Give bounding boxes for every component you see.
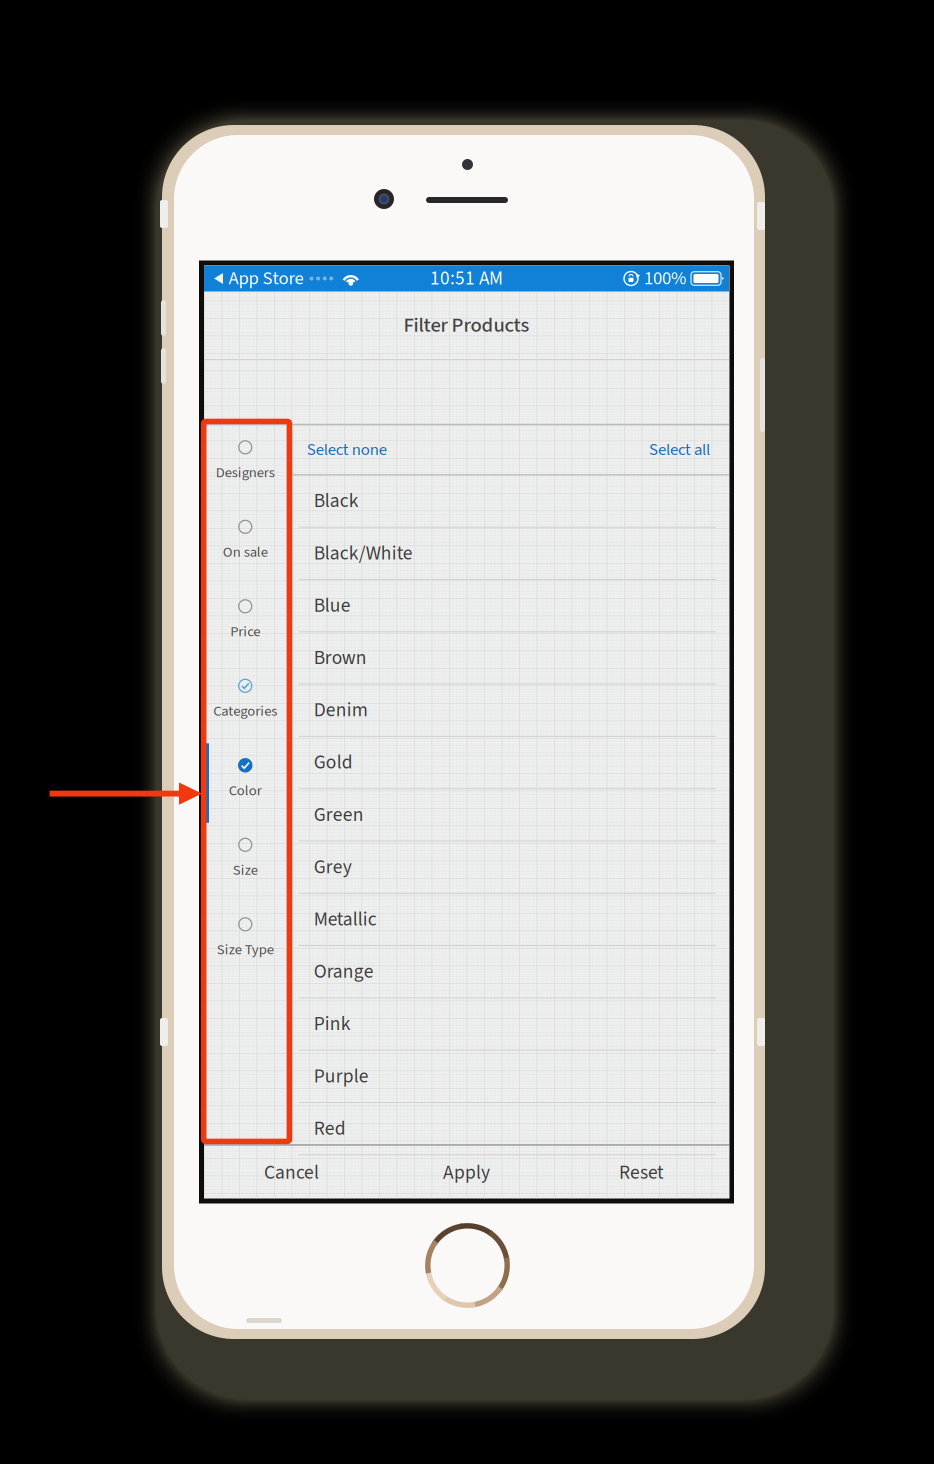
button[interactable]: Purple — [288, 1051, 729, 1102]
button[interactable]: Red — [288, 1103, 729, 1154]
staticText: App Store — [228, 265, 303, 292]
button[interactable]: Gold — [288, 737, 729, 788]
button[interactable]: Categories — [204, 664, 286, 743]
staticText: 100% — [644, 265, 686, 292]
button[interactable]: Size — [204, 823, 286, 902]
staticText: Select none — [307, 438, 387, 462]
button[interactable]: Designers — [204, 425, 286, 505]
button[interactable]: Cancel — [204, 1146, 379, 1200]
button[interactable]: Grey — [288, 841, 729, 893]
button[interactable]: On sale — [204, 505, 286, 584]
staticText: Designers — [216, 462, 275, 483]
button[interactable]: Blue — [288, 580, 729, 631]
button[interactable]: Apply — [379, 1146, 554, 1200]
staticText: 10:51 AM — [430, 265, 503, 292]
button[interactable]: Price — [204, 584, 286, 664]
staticText: Select all — [649, 438, 710, 462]
staticText: Denim — [314, 696, 368, 724]
button[interactable]: Metallic — [288, 894, 729, 945]
button[interactable]: Size Type — [204, 902, 286, 982]
staticText: Green — [314, 801, 364, 829]
button[interactable]: Color — [204, 743, 286, 823]
staticText: Orange — [314, 958, 374, 986]
staticText: Brown — [314, 644, 367, 672]
staticText: Blue — [314, 592, 351, 619]
staticText: Pink — [314, 1010, 351, 1038]
staticText: Apply — [443, 1159, 490, 1186]
staticText: On sale — [223, 542, 268, 563]
staticText: Gold — [314, 749, 353, 776]
staticText: Reset — [619, 1159, 664, 1186]
staticText: Purple — [314, 1062, 369, 1090]
button[interactable]: Black — [288, 475, 729, 527]
staticText: Red — [314, 1115, 346, 1142]
button[interactable]: Select none — [288, 425, 729, 474]
staticText: Size — [233, 860, 258, 881]
staticText: Price — [230, 621, 260, 642]
staticText: Metallic — [314, 906, 377, 933]
staticText: Black — [314, 487, 359, 515]
staticText: Color — [229, 780, 262, 801]
button[interactable]: Denim — [288, 685, 729, 736]
staticText: Cancel — [264, 1159, 319, 1186]
staticText: Black/White — [314, 539, 413, 567]
button[interactable]: Black/White — [288, 528, 729, 579]
button[interactable]: Green — [288, 789, 729, 840]
staticText: Size Type — [217, 939, 274, 960]
staticText: Categories — [213, 701, 277, 722]
button[interactable]: Orange — [288, 946, 729, 997]
staticText: Filter Products — [403, 310, 529, 340]
button[interactable]: Brown — [288, 632, 729, 684]
staticText: Grey — [314, 853, 352, 881]
button[interactable]: Pink — [288, 998, 729, 1050]
button[interactable]: Reset — [554, 1146, 729, 1200]
